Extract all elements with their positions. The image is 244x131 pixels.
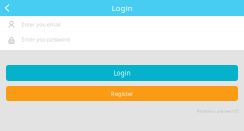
staticText: Enter you email — [21, 21, 60, 28]
staticText: Login — [113, 69, 130, 77]
staticText: Enter you password — [21, 36, 69, 43]
button[interactable]: Reset you password? — [197, 108, 239, 114]
button[interactable]: Login — [6, 65, 238, 81]
staticText: Login — [111, 3, 132, 13]
button[interactable]: Register — [6, 86, 238, 101]
button[interactable]: Back — [0, 0, 19, 16]
staticText: Reset you password? — [197, 108, 239, 114]
staticText: Register — [111, 90, 133, 97]
